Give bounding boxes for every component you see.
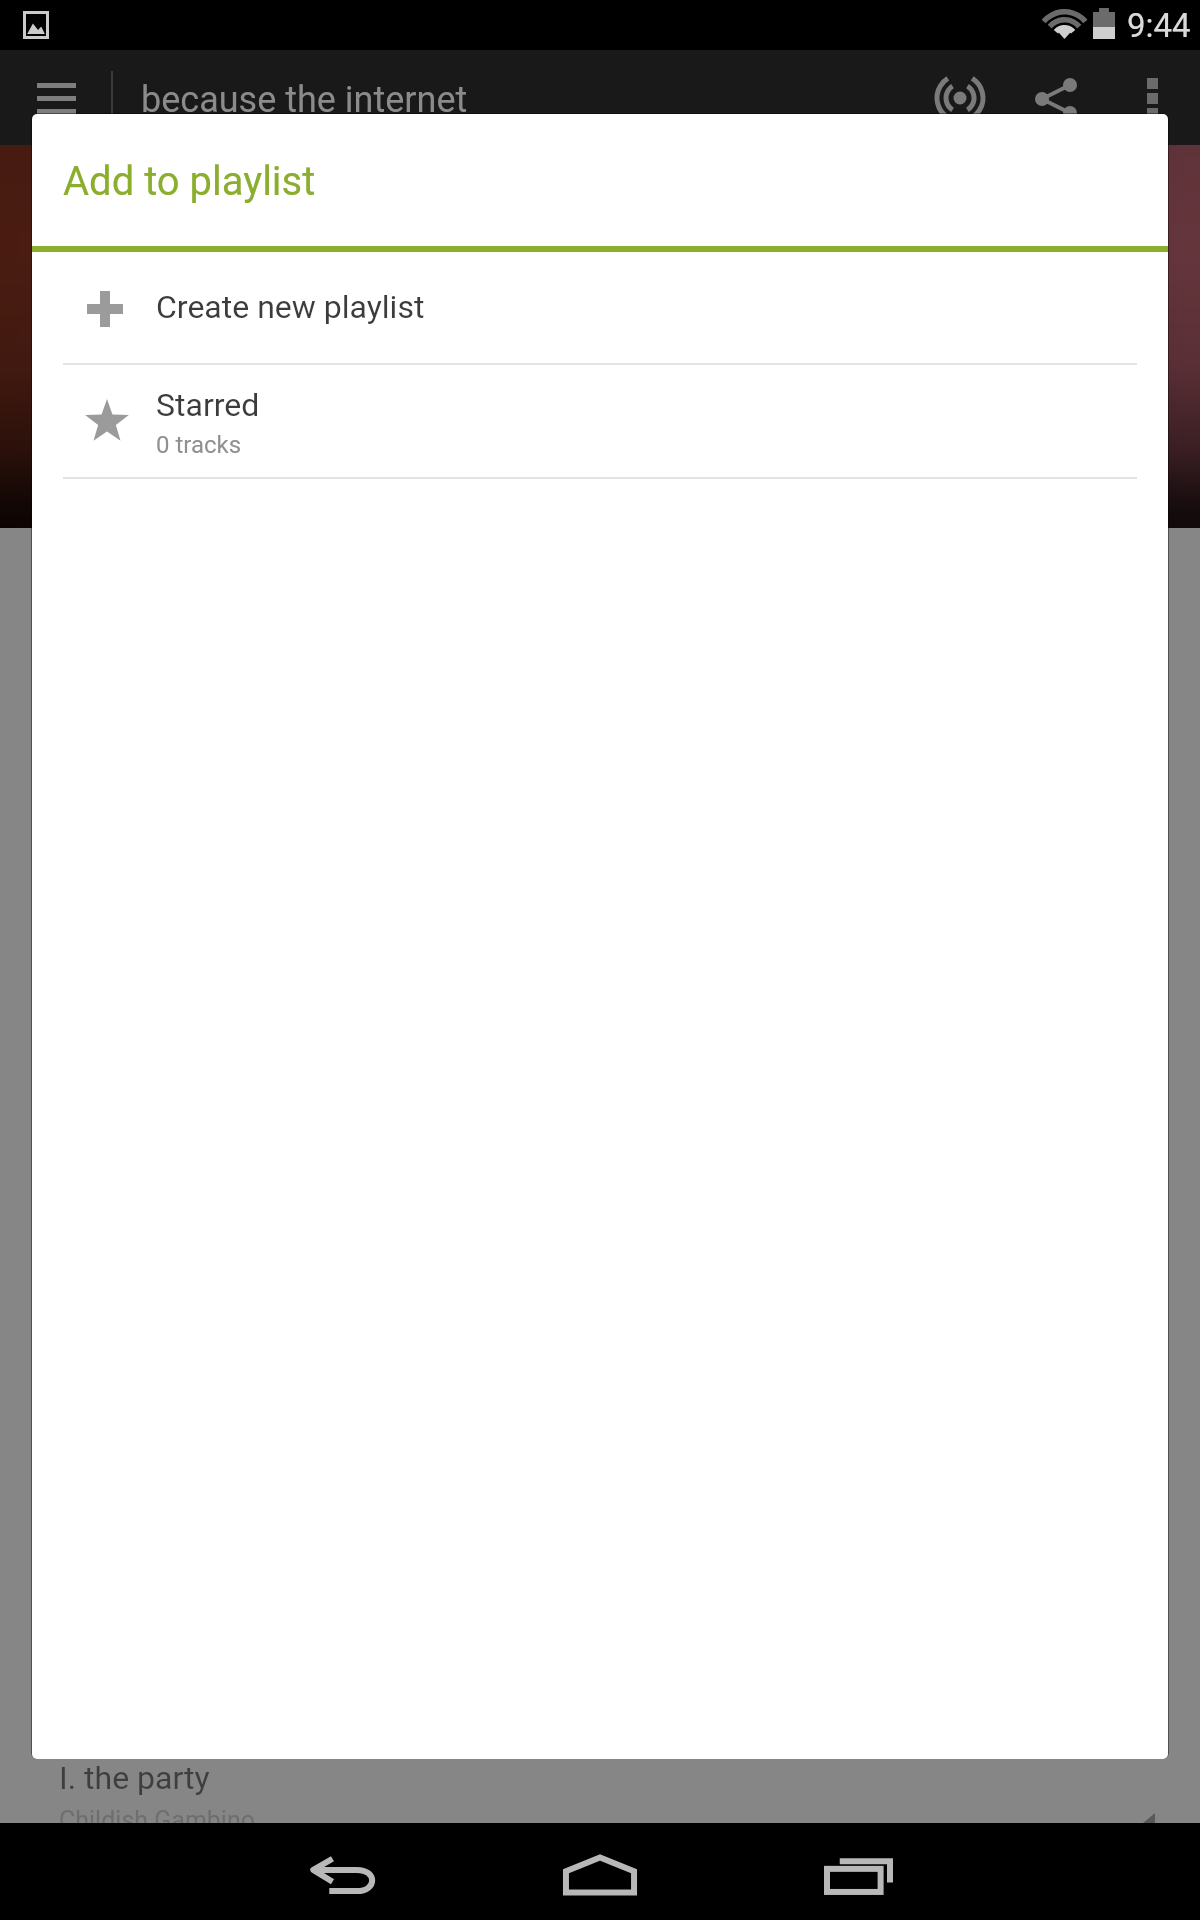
button[interactable]: Home <box>520 1826 680 1920</box>
button[interactable]: Share <box>1012 50 1100 145</box>
staticText: because the internet <box>141 79 468 121</box>
button[interactable]: Recent apps <box>778 1827 938 1920</box>
button[interactable]: Starred <box>32 364 1168 477</box>
staticText: Add to playlist <box>63 158 316 205</box>
staticText: Childish Gambino <box>59 1806 255 1835</box>
button[interactable]: Back <box>264 1827 424 1920</box>
button[interactable]: Cast <box>916 50 1004 145</box>
staticText: 0 tracks <box>156 431 242 459</box>
button[interactable]: Open navigation drawer <box>0 50 112 145</box>
button[interactable]: Create new playlist <box>32 252 1168 364</box>
staticText: Starred <box>156 386 260 424</box>
staticText: 9:44 <box>1127 6 1191 45</box>
staticText: Create new playlist <box>156 288 425 326</box>
staticText: I. the party <box>59 1759 210 1797</box>
button[interactable]: More options <box>1114 50 1190 145</box>
